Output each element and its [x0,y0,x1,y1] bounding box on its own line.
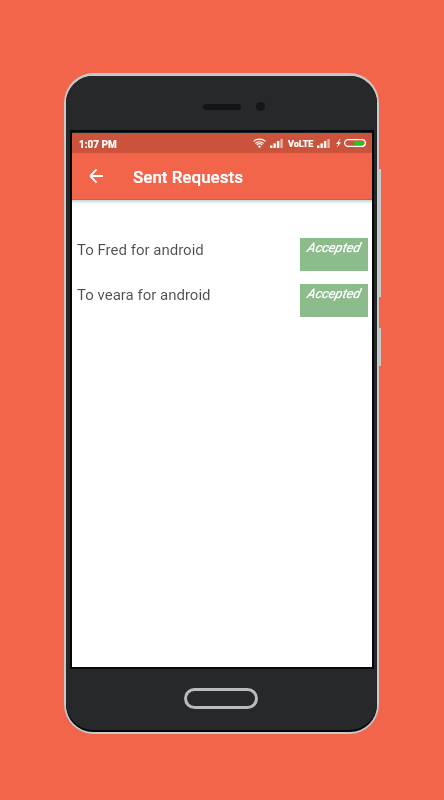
staticText: Sent Requests [133,167,243,187]
staticText: 1:07 PM [79,139,117,151]
staticText: To Fred for android [77,241,204,259]
button[interactable]: To veara for android [72,278,372,323]
staticText: Accepted [306,286,360,301]
button[interactable]: To Fred for android [72,232,372,277]
staticText: VoLTE [288,139,314,150]
staticText: To veara for android [77,286,211,304]
button[interactable]: Navigate back [80,160,112,192]
staticText: Accepted [306,240,360,255]
